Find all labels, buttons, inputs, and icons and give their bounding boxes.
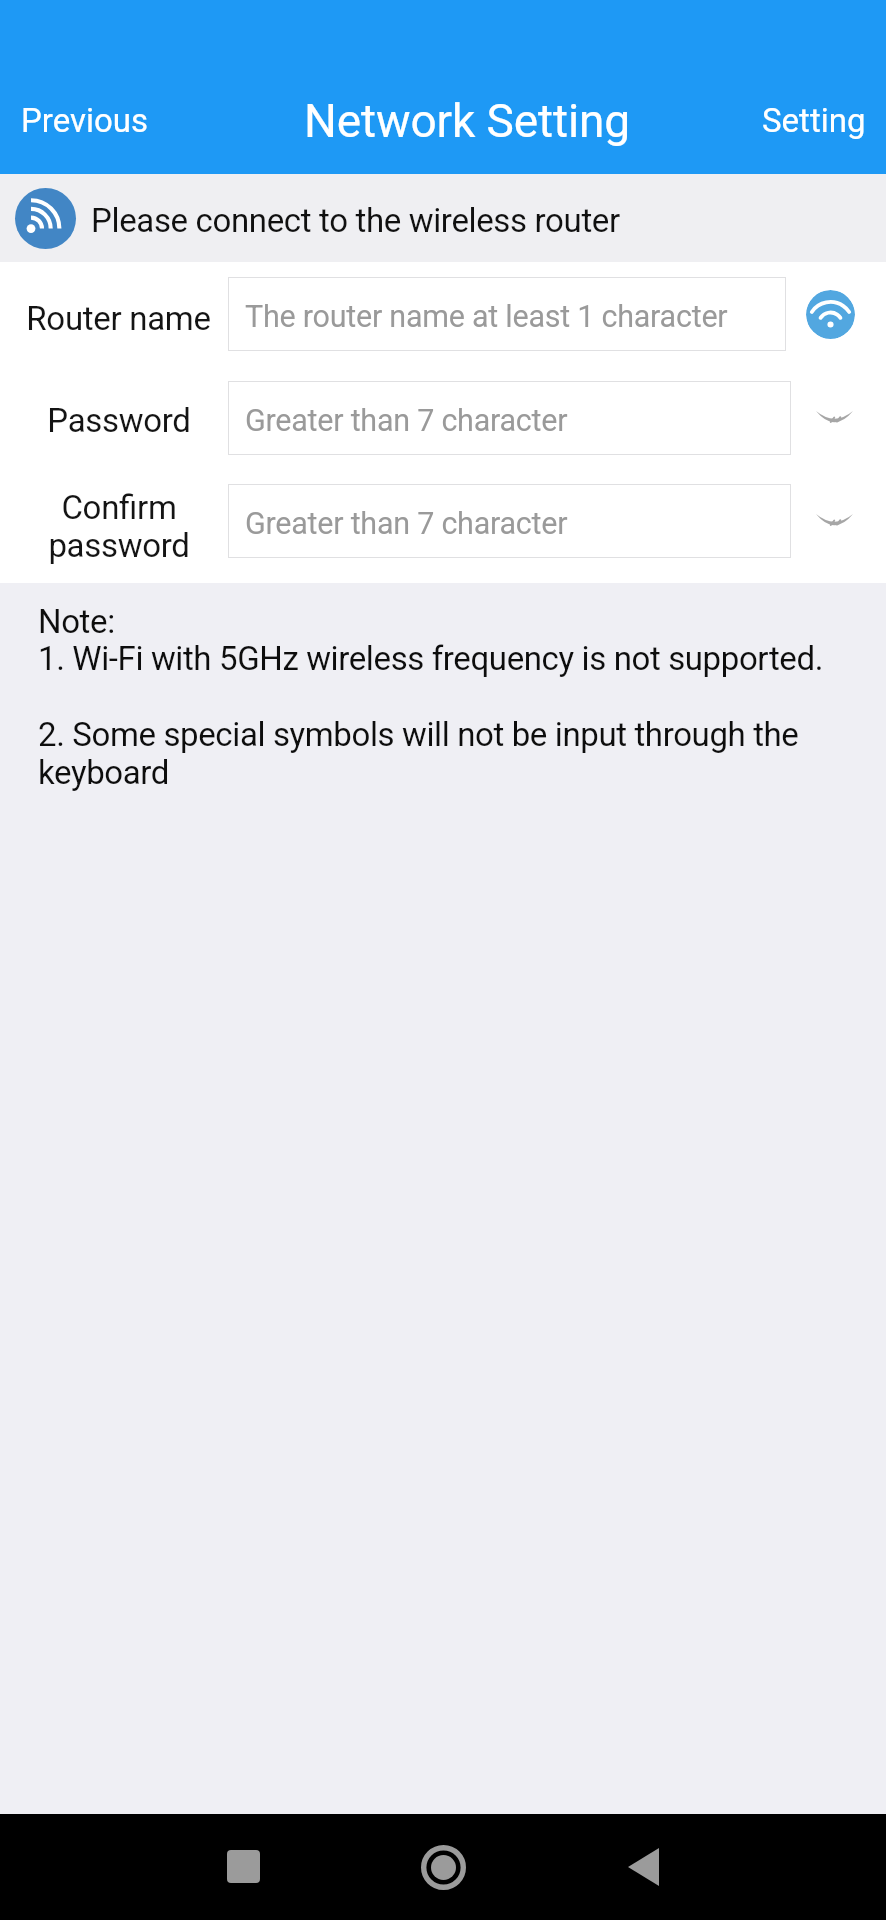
staticText: Network Setting <box>304 94 631 148</box>
button[interactable]: Home <box>393 1814 493 1920</box>
staticText: Setting <box>762 101 866 140</box>
staticText: Confirm password <box>48 488 190 565</box>
staticText: Previous <box>21 101 149 140</box>
button[interactable]: Greater than 7 character <box>228 484 791 558</box>
staticText: Greater than 7 character <box>245 506 568 542</box>
button[interactable]: The router name at least 1 character <box>228 277 786 351</box>
staticText: Note: 1. Wi-Fi with 5GHz wireless freque… <box>38 602 886 792</box>
staticText: The router name at least 1 character <box>245 299 728 335</box>
button[interactable]: Show password <box>803 387 865 449</box>
button[interactable]: Previous <box>0 91 176 150</box>
staticText: Please connect to the wireless router <box>91 201 620 240</box>
button[interactable]: Scan for Wi-Fi networks <box>806 290 855 339</box>
button[interactable]: Setting <box>735 91 886 150</box>
button[interactable]: Back <box>593 1814 693 1920</box>
button[interactable]: Show password <box>803 490 865 552</box>
button[interactable]: Recent apps <box>193 1814 293 1920</box>
staticText: Router name <box>26 299 211 338</box>
staticText: Greater than 7 character <box>245 403 568 439</box>
staticText: Password <box>47 401 191 440</box>
button[interactable]: Greater than 7 character <box>228 381 791 455</box>
